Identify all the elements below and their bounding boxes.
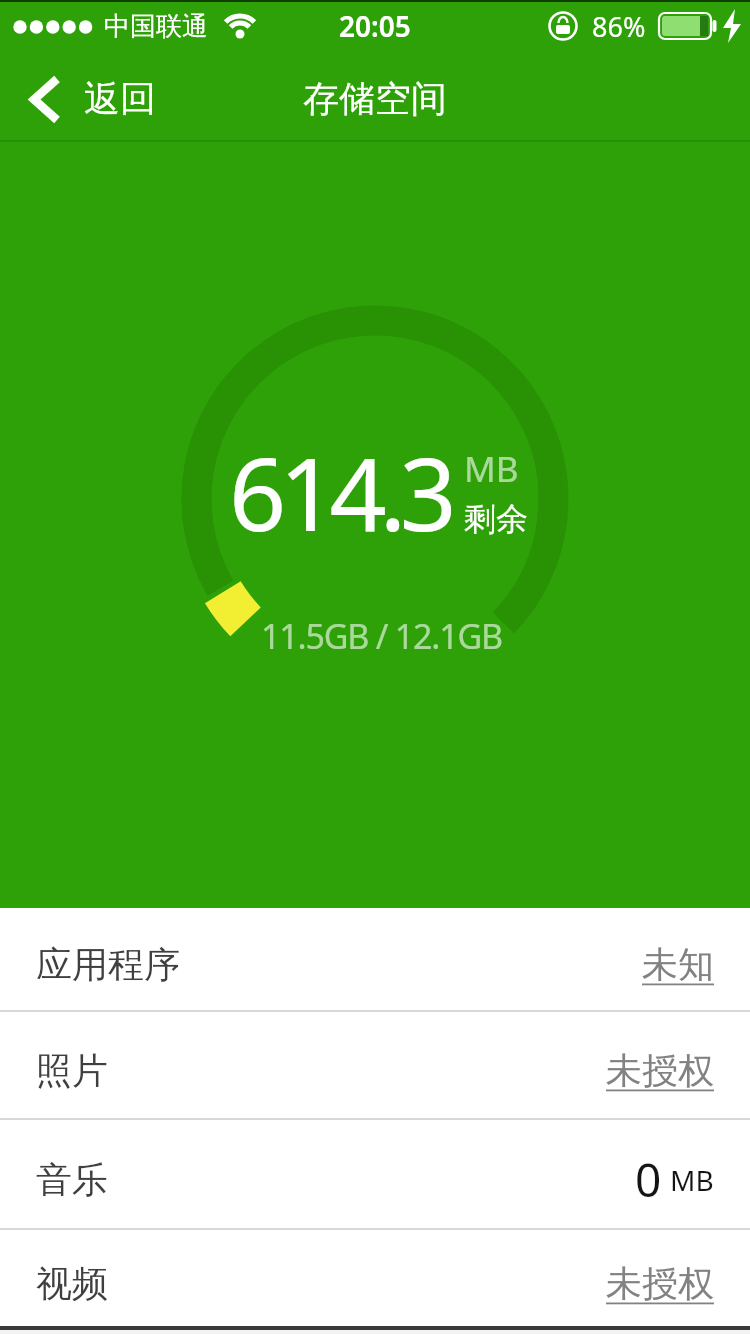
- staticText: 照片: [36, 1048, 108, 1093]
- staticText: MB: [464, 445, 519, 493]
- staticText: 中国联通: [104, 10, 208, 43]
- staticText: 应用程序: [36, 942, 180, 987]
- staticText: 0: [635, 1148, 662, 1211]
- staticText: 11.5GB / 12.1GB: [261, 613, 502, 659]
- staticText: 未知: [642, 942, 714, 987]
- staticText: 存储空间: [303, 76, 447, 121]
- staticText: 86%: [592, 8, 646, 45]
- staticText: 视频: [36, 1261, 108, 1306]
- button[interactable]: 应用程序: [0, 908, 750, 1010]
- button[interactable]: 照片: [0, 1012, 750, 1118]
- staticText: MB: [670, 1161, 714, 1199]
- staticText: 未授权: [606, 1048, 714, 1093]
- button[interactable]: 音乐: [0, 1120, 750, 1228]
- button[interactable]: 视频: [0, 1230, 750, 1326]
- staticText: 614.3: [229, 424, 450, 560]
- staticText: 20:05: [339, 7, 411, 45]
- staticText: 剩余: [464, 499, 528, 539]
- staticText: 未授权: [606, 1261, 714, 1306]
- staticText: 返回: [84, 76, 156, 121]
- staticText: 音乐: [36, 1157, 108, 1202]
- button[interactable]: 返回: [24, 54, 156, 142]
